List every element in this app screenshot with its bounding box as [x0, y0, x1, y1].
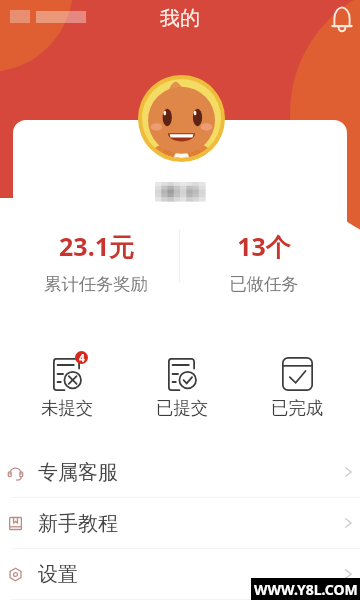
button[interactable]: 23.1元: [13, 229, 179, 295]
staticText: 专属客服: [38, 460, 118, 485]
button[interactable]: 4: [10, 351, 125, 419]
button[interactable]: 专属客服: [0, 447, 360, 497]
button[interactable]: 已提交: [125, 351, 240, 419]
staticText: 13个: [237, 229, 291, 263]
staticText: 我的: [160, 6, 200, 31]
staticText: 新手教程: [38, 511, 118, 536]
staticText: WWW.Y8L.COM: [254, 580, 358, 599]
button[interactable]: Notifications: [324, 1, 360, 37]
staticText: 23.1元: [59, 229, 134, 263]
staticText: 未提交: [41, 397, 94, 419]
button[interactable]: 13个: [180, 229, 347, 295]
button[interactable]: 已完成: [240, 351, 355, 419]
staticText: 设置: [38, 562, 78, 587]
button[interactable]: 设置: [0, 549, 360, 599]
staticText: 4: [79, 351, 85, 364]
button[interactable]: 新手教程: [0, 498, 360, 548]
staticText: 已提交: [156, 397, 209, 419]
staticText: 累计任务奖励: [44, 273, 148, 295]
staticText: 已做任务: [229, 273, 299, 295]
staticText: 已完成: [271, 397, 324, 419]
